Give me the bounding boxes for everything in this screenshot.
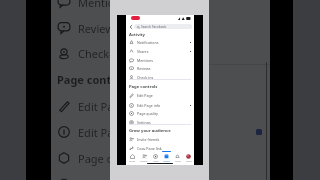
staticText: Friends bbox=[140, 160, 148, 163]
button[interactable]: Reviews bbox=[129, 64, 191, 72]
button[interactable]: Notifications bbox=[172, 150, 183, 163]
staticText: Search Facebook bbox=[141, 25, 167, 29]
staticText: Reviews bbox=[137, 66, 151, 71]
staticText: Invite friends bbox=[137, 137, 160, 142]
staticText: Page controls bbox=[129, 84, 158, 90]
button[interactable]: Friends bbox=[138, 150, 150, 163]
button[interactable]: Page quality bbox=[51, 147, 110, 169]
staticText: Home bbox=[129, 160, 136, 163]
button[interactable]: Copy Page link bbox=[129, 144, 191, 152]
staticText: Mentions bbox=[78, 0, 110, 10]
button[interactable]: Edit Page bbox=[129, 91, 191, 99]
staticText: Menu bbox=[186, 160, 192, 163]
staticText: Page controls bbox=[57, 72, 116, 87]
button[interactable]: Back bbox=[128, 24, 134, 30]
staticText: Page quality bbox=[78, 151, 110, 166]
staticText: Copy Page link bbox=[137, 146, 162, 151]
button[interactable]: Mentions bbox=[51, 0, 110, 13]
staticText: Mentions bbox=[137, 58, 153, 63]
button[interactable]: Menu bbox=[183, 150, 194, 163]
staticText: Edit Page info bbox=[137, 103, 161, 108]
staticText: Edit Page info bbox=[78, 125, 110, 140]
staticText: Video bbox=[153, 160, 159, 163]
button[interactable]: Edit Page info bbox=[129, 101, 191, 109]
staticText: Edit Page bbox=[137, 93, 153, 98]
staticText: Activity bbox=[129, 32, 145, 38]
button[interactable]: Video bbox=[150, 150, 161, 163]
button[interactable]: Edit Page bbox=[51, 95, 110, 117]
button[interactable]: Check-ins bbox=[129, 73, 191, 81]
button[interactable]: Invite friends bbox=[129, 135, 191, 143]
button[interactable]: Notifications bbox=[129, 38, 191, 46]
button[interactable]: Reviews bbox=[51, 17, 110, 39]
staticText: Reviews bbox=[78, 21, 110, 36]
button[interactable]: Settings bbox=[129, 118, 191, 126]
button[interactable]: Shares bbox=[129, 47, 191, 55]
staticText: Grow your audience bbox=[129, 128, 171, 134]
staticText: Shares bbox=[137, 49, 149, 54]
staticText: Settings bbox=[137, 120, 151, 125]
staticText: Page quality bbox=[137, 111, 158, 116]
staticText: Edit Page bbox=[78, 99, 110, 114]
staticText: Notifications bbox=[137, 40, 159, 45]
staticText: Market bbox=[163, 160, 171, 163]
button[interactable]: Edit Page info bbox=[51, 121, 110, 143]
button[interactable]: Page quality bbox=[129, 109, 191, 117]
staticText: Alerts bbox=[175, 160, 181, 163]
button[interactable]: Marketplace bbox=[161, 150, 172, 163]
button[interactable]: Mentions bbox=[129, 56, 191, 64]
button[interactable]: Check-ins bbox=[51, 42, 110, 64]
button[interactable]: Search Facebook bbox=[134, 24, 192, 29]
staticText: Check-ins bbox=[78, 46, 110, 61]
button[interactable]: Home bbox=[126, 150, 138, 163]
staticText: Check-ins bbox=[137, 75, 154, 80]
button[interactable]: Settings bbox=[51, 173, 110, 180]
